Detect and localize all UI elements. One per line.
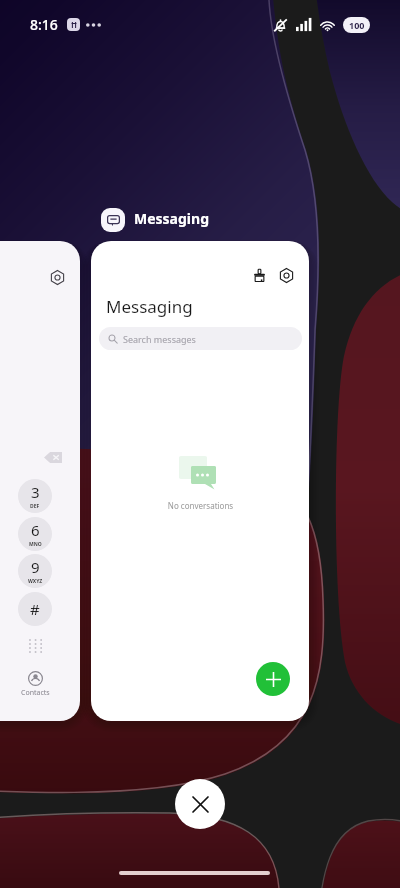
staticText: 3 xyxy=(31,482,40,502)
button[interactable]: Search messages xyxy=(99,327,302,350)
staticText: MNO xyxy=(29,541,42,548)
staticText: WXYZ xyxy=(28,578,43,585)
button[interactable]: Clean up xyxy=(248,264,270,286)
button[interactable]: Settings xyxy=(0,241,80,721)
staticText: 6 xyxy=(31,520,40,540)
staticText: No conversations xyxy=(99,500,302,511)
staticText: Search messages xyxy=(123,333,196,345)
button[interactable]: 9 xyxy=(18,554,52,588)
staticText: 9 xyxy=(31,557,40,577)
button[interactable]: 6 xyxy=(18,517,52,551)
button[interactable]: Settings xyxy=(275,264,297,286)
staticText: 8:16 xyxy=(30,15,58,34)
button[interactable]: Messaging app icon xyxy=(101,208,125,232)
button[interactable]: Settings xyxy=(47,267,67,287)
staticText: Messaging xyxy=(134,209,209,228)
button[interactable]: Contacts xyxy=(13,671,57,698)
button[interactable]: Clean up xyxy=(91,241,309,721)
button[interactable]: Close all xyxy=(175,779,225,829)
staticText: # xyxy=(30,599,40,619)
staticText: Contacts xyxy=(21,688,50,698)
button[interactable]: # xyxy=(18,592,52,626)
staticText: DEF xyxy=(30,503,40,510)
button[interactable]: 3 xyxy=(18,479,52,513)
staticText: 100 xyxy=(349,19,365,31)
button[interactable]: New conversation xyxy=(256,662,290,696)
staticText: Messaging xyxy=(106,295,193,318)
